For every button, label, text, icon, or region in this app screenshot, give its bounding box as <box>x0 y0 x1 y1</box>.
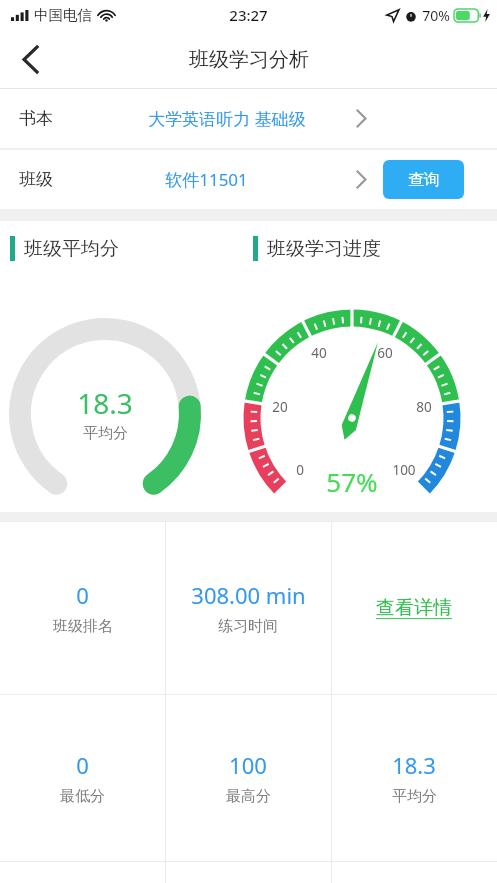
staticText: 班级排名 <box>53 617 113 636</box>
staticText: 100 <box>392 461 416 479</box>
staticText: 0 <box>76 750 89 780</box>
staticText: 查询 <box>408 170 440 190</box>
staticText: 班级 <box>19 169 53 190</box>
staticText: 23:27 <box>229 5 268 25</box>
button[interactable]: 查看详情 <box>331 522 497 694</box>
staticText: 18.3 <box>392 750 436 780</box>
button[interactable]: 查询 <box>383 160 464 199</box>
button[interactable]: 308.00 min <box>165 522 331 694</box>
staticText: 班级学习分析 <box>189 47 309 72</box>
staticText: 70% <box>422 6 450 25</box>
button[interactable]: 0 <box>0 695 165 861</box>
staticText: 57% <box>326 464 378 499</box>
staticText: 最高分 <box>226 787 271 806</box>
staticText: 大学英语听力 基础级 <box>148 107 306 130</box>
staticText: 80 <box>416 398 432 416</box>
staticText: 100 <box>229 750 267 780</box>
staticText: 班级学习进度 <box>267 237 381 261</box>
button[interactable]: 软件11501 <box>96 150 376 209</box>
button[interactable]: 0 <box>0 522 165 694</box>
staticText: 查看详情 <box>376 596 452 620</box>
staticText: 最低分 <box>60 787 105 806</box>
staticText: 平均分 <box>392 787 437 806</box>
staticText: 软件11501 <box>165 168 248 191</box>
button[interactable]: Back <box>6 35 54 83</box>
button[interactable]: 18.3 <box>331 695 497 861</box>
staticText: 18.3 <box>77 384 133 422</box>
staticText: 0 <box>296 461 304 479</box>
staticText: 中国电信 <box>34 6 92 24</box>
staticText: 60 <box>377 344 393 362</box>
staticText: 20 <box>272 398 288 416</box>
staticText: 308.00 min <box>191 580 306 610</box>
staticText: 0 <box>76 580 89 610</box>
staticText: 书本 <box>19 108 53 129</box>
button[interactable]: 100 <box>165 695 331 861</box>
staticText: 练习时间 <box>218 617 278 636</box>
staticText: 平均分 <box>83 424 128 443</box>
staticText: 40 <box>311 344 327 362</box>
staticText: 班级平均分 <box>24 237 119 261</box>
button[interactable]: 大学英语听力 基础级 <box>96 89 376 148</box>
